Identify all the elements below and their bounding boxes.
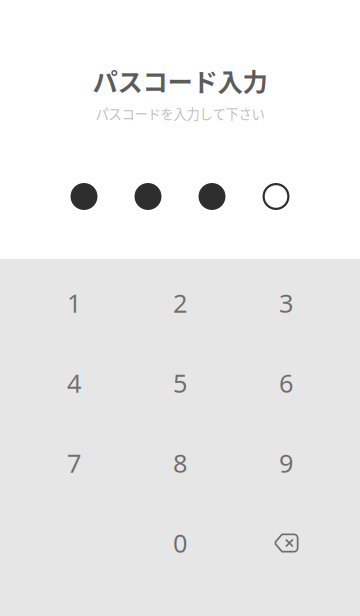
button[interactable]: 2: [127, 263, 233, 343]
button[interactable]: 4: [21, 343, 127, 423]
staticText: 4: [67, 366, 81, 400]
staticText: 0: [173, 526, 187, 560]
button[interactable]: 7: [21, 423, 127, 503]
button[interactable]: 9: [233, 423, 339, 503]
button[interactable]: Delete: [233, 503, 339, 583]
button[interactable]: 6: [233, 343, 339, 423]
button[interactable]: 1: [21, 263, 127, 343]
staticText: 1: [67, 286, 81, 320]
staticText: 7: [67, 446, 81, 480]
button[interactable]: 0: [127, 503, 233, 583]
staticText: 6: [279, 366, 293, 400]
staticText: パスコードを入力して下さい: [95, 104, 264, 123]
button[interactable]: 3: [233, 263, 339, 343]
staticText: 2: [173, 286, 187, 320]
staticText: 3: [279, 286, 293, 320]
staticText: 8: [173, 446, 187, 480]
staticText: 5: [173, 366, 187, 400]
button[interactable]: 8: [127, 423, 233, 503]
button[interactable]: 5: [127, 343, 233, 423]
staticText: パスコード入力: [92, 62, 267, 99]
staticText: 9: [279, 446, 293, 480]
